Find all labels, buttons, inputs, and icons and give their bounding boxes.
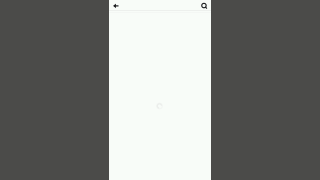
button[interactable]: Search [198, 0, 211, 10]
button[interactable]: Back [109, 0, 122, 10]
